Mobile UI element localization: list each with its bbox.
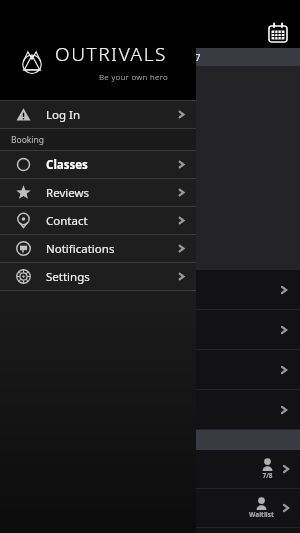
button[interactable]: Classes: [0, 151, 196, 178]
staticText: Waitlist: [249, 510, 274, 519]
button[interactable]: Waitlist: [0, 489, 300, 527]
button[interactable]: Log In: [0, 101, 196, 128]
staticText: Notifications: [46, 241, 115, 257]
button[interactable]: [0, 270, 300, 309]
button[interactable]: Reviews: [0, 179, 196, 206]
button[interactable]: Notifications: [0, 235, 196, 262]
button[interactable]: [0, 310, 300, 349]
staticText: 17: [190, 51, 201, 63]
staticText: Be your own hero: [99, 71, 168, 82]
staticText: Booking: [11, 134, 45, 146]
staticText: Reviews: [46, 185, 90, 201]
button[interactable]: [0, 390, 300, 429]
button[interactable]: Settings: [0, 263, 196, 290]
button[interactable]: 7/8: [0, 450, 300, 488]
staticText: Classes: [46, 157, 88, 173]
staticText: OUTRIVALS: [55, 41, 168, 67]
staticText: Log In: [46, 107, 81, 123]
button[interactable]: Calendar: [266, 21, 290, 45]
button[interactable]: Contact: [0, 207, 196, 234]
staticText: 7/8: [262, 471, 273, 480]
staticText: Contact: [46, 213, 88, 229]
staticText: Settings: [46, 269, 90, 285]
button[interactable]: [0, 350, 300, 389]
